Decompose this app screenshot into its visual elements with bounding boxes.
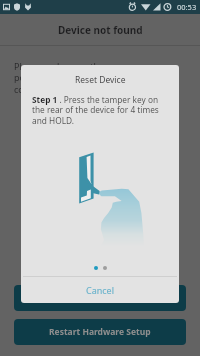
staticText: Device not found (58, 23, 143, 37)
staticText: 00:53 (177, 2, 197, 12)
button[interactable]: Device not found (0, 14, 200, 45)
staticText: Reset Device (75, 74, 126, 86)
staticText: Search Again (72, 292, 128, 304)
staticText: Please make sure the power is on and dev… (14, 60, 120, 96)
button[interactable]: Cancel (21, 277, 179, 303)
staticText: Restart Hardware Setup (49, 326, 151, 338)
staticText: Step 1 . Press the tamper key on the rea… (32, 94, 169, 127)
button[interactable]: Search Again (14, 285, 186, 311)
staticText: Cancel (86, 284, 115, 296)
button[interactable]: Restart Hardware Setup (14, 319, 186, 345)
